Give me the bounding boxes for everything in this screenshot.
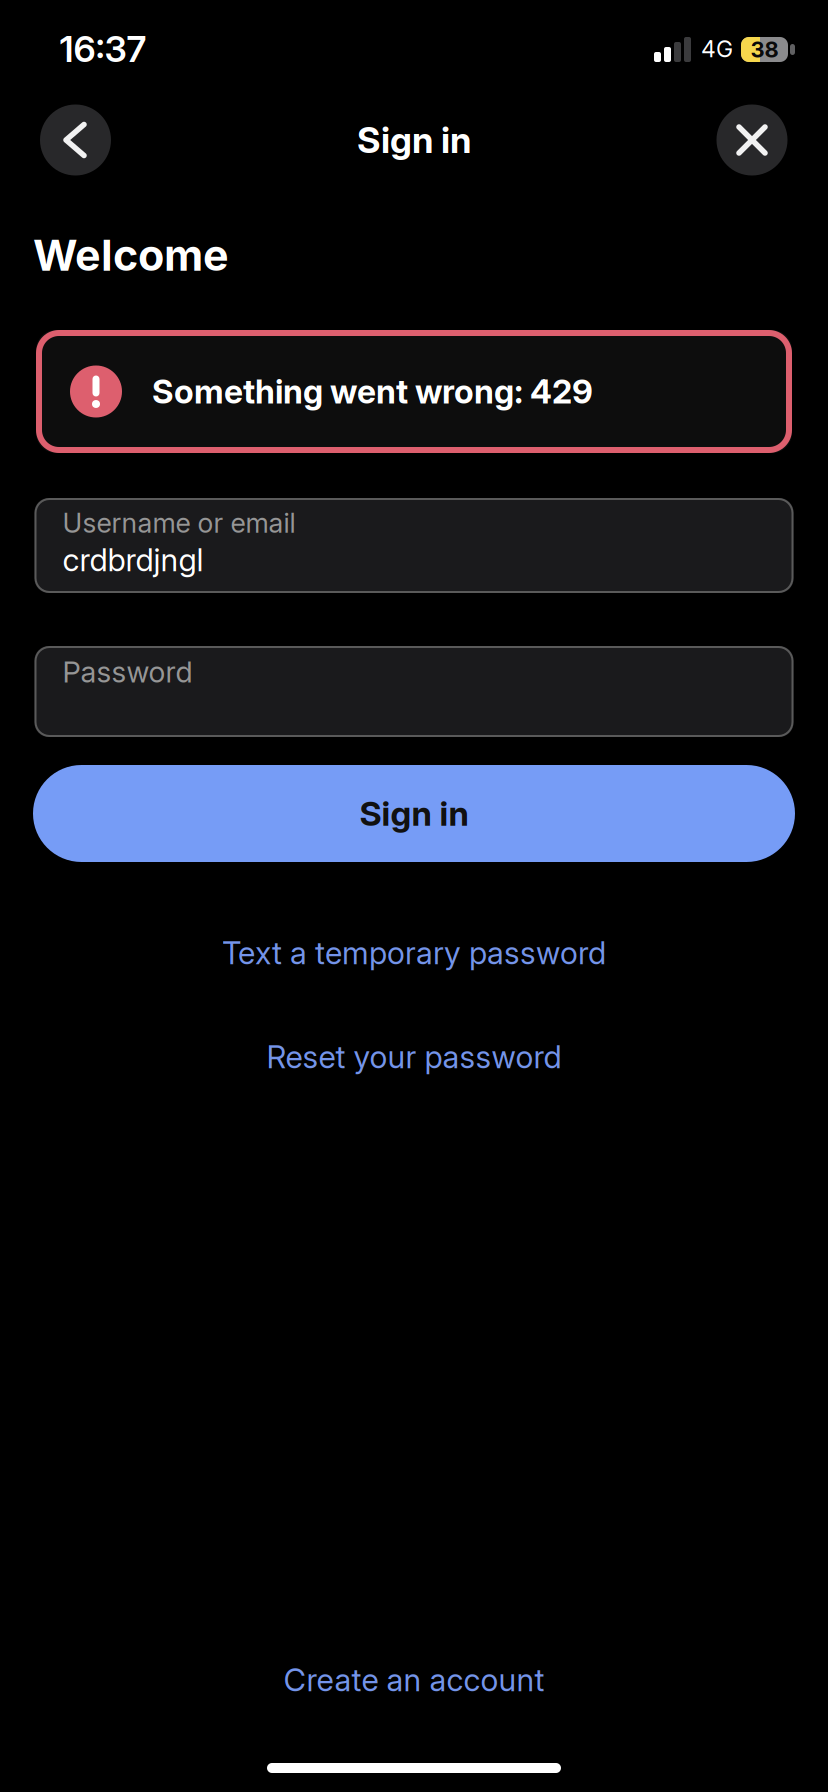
staticText: Username or email [62, 507, 295, 539]
button[interactable]: Username or email [34, 498, 793, 593]
button[interactable]: Close [716, 104, 787, 175]
staticText: Text a temporary password [222, 934, 606, 972]
staticText: Password [62, 654, 192, 690]
staticText: crdbrdjngl [62, 541, 203, 579]
button[interactable]: Reset your password [266, 1038, 561, 1076]
staticText: 16:37 [59, 27, 146, 71]
button[interactable]: Text a temporary password [222, 934, 606, 972]
button[interactable]: Sign in [33, 765, 795, 862]
staticText: Reset your password [266, 1038, 561, 1076]
staticText: Welcome [33, 229, 229, 281]
button[interactable]: Back [40, 104, 111, 175]
staticText: Sign in [359, 793, 468, 834]
staticText: Create an account [283, 1661, 544, 1699]
staticText: 38 [750, 36, 778, 63]
staticText: 4G [701, 35, 733, 63]
button[interactable]: Create an account [283, 1661, 544, 1699]
staticText: Sign in [357, 118, 471, 162]
staticText: Something went wrong: 429 [152, 371, 593, 411]
button[interactable]: Password [34, 646, 793, 737]
